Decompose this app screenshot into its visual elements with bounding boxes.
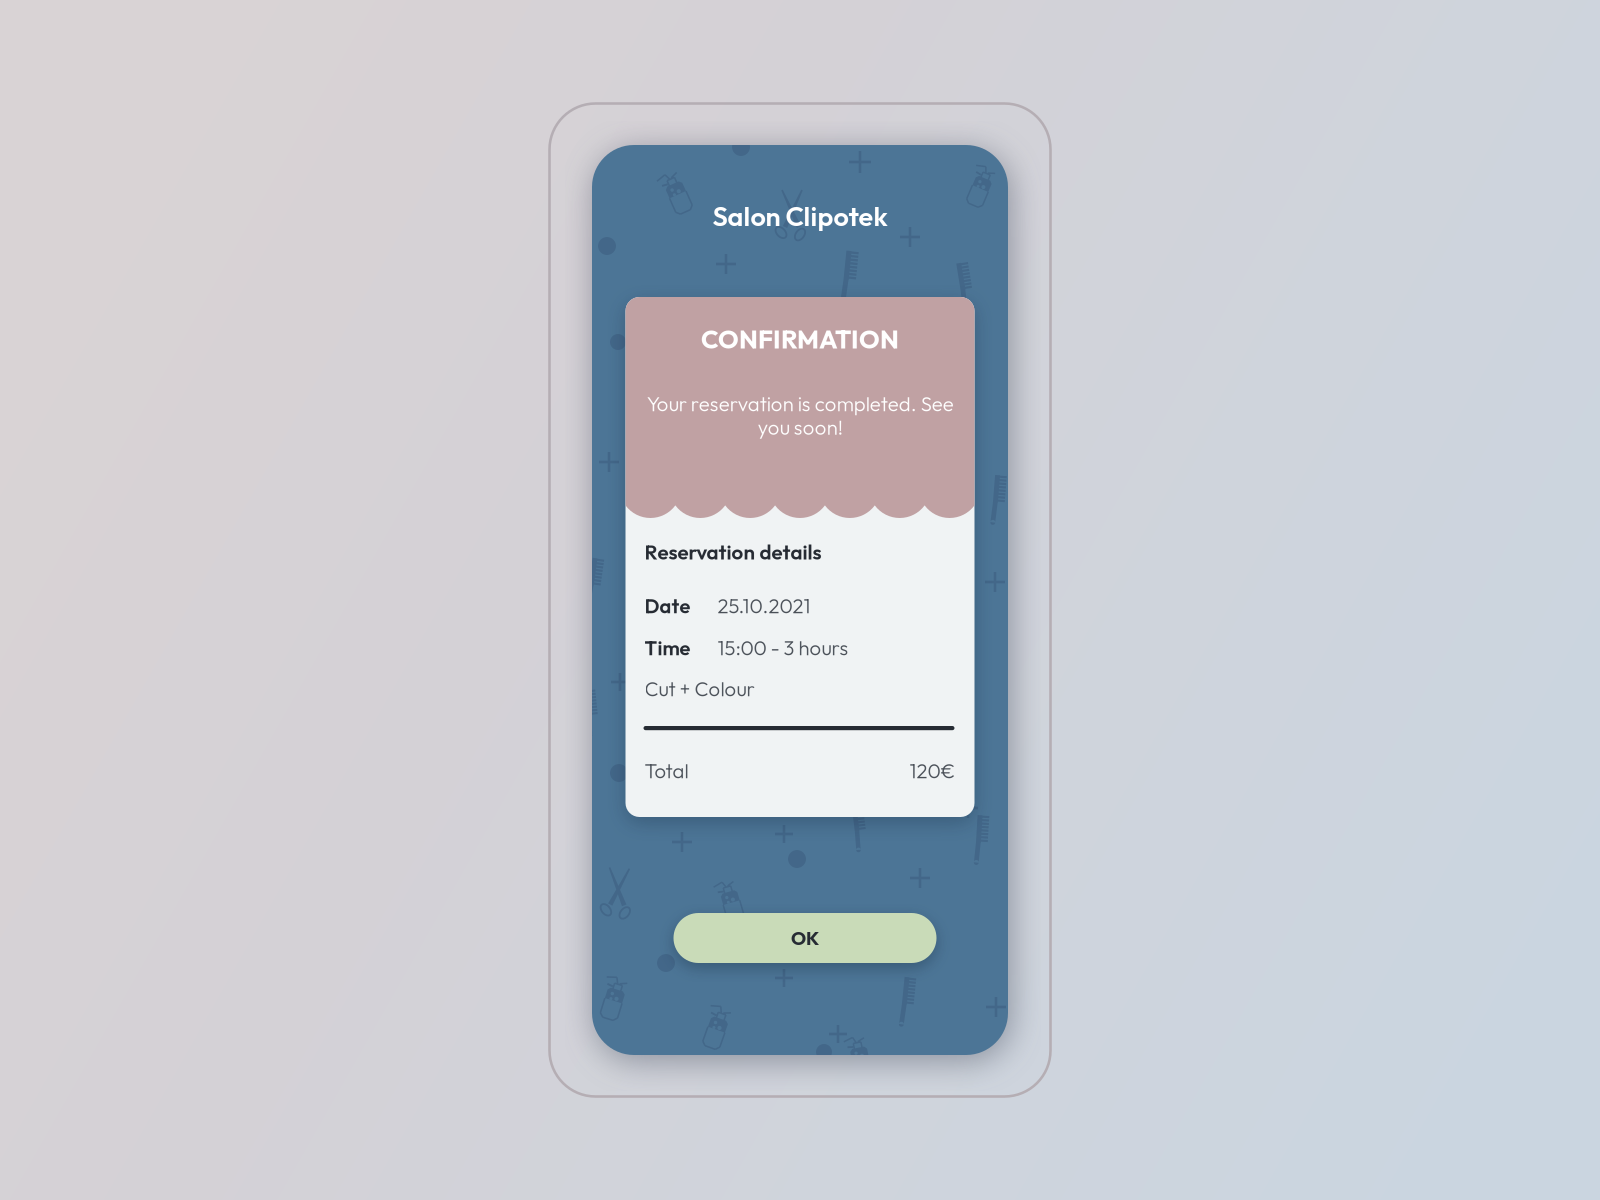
button[interactable]: OK: [673, 913, 936, 963]
staticText: Salon Clipotek: [712, 199, 887, 233]
staticText: 25.10.2021: [717, 593, 810, 618]
staticText: 15:00 - 3 hours: [717, 635, 848, 660]
staticText: OK: [791, 926, 819, 950]
staticText: Reservation details: [644, 539, 821, 565]
staticText: Date: [644, 593, 690, 618]
staticText: Total: [644, 758, 688, 783]
staticText: CONFIRMATION: [701, 323, 899, 355]
staticText: Cut + Colour: [644, 676, 754, 701]
staticText: 120€: [909, 758, 955, 783]
staticText: Time: [644, 635, 690, 660]
staticText: Your reservation is completed. See you s…: [646, 391, 953, 440]
